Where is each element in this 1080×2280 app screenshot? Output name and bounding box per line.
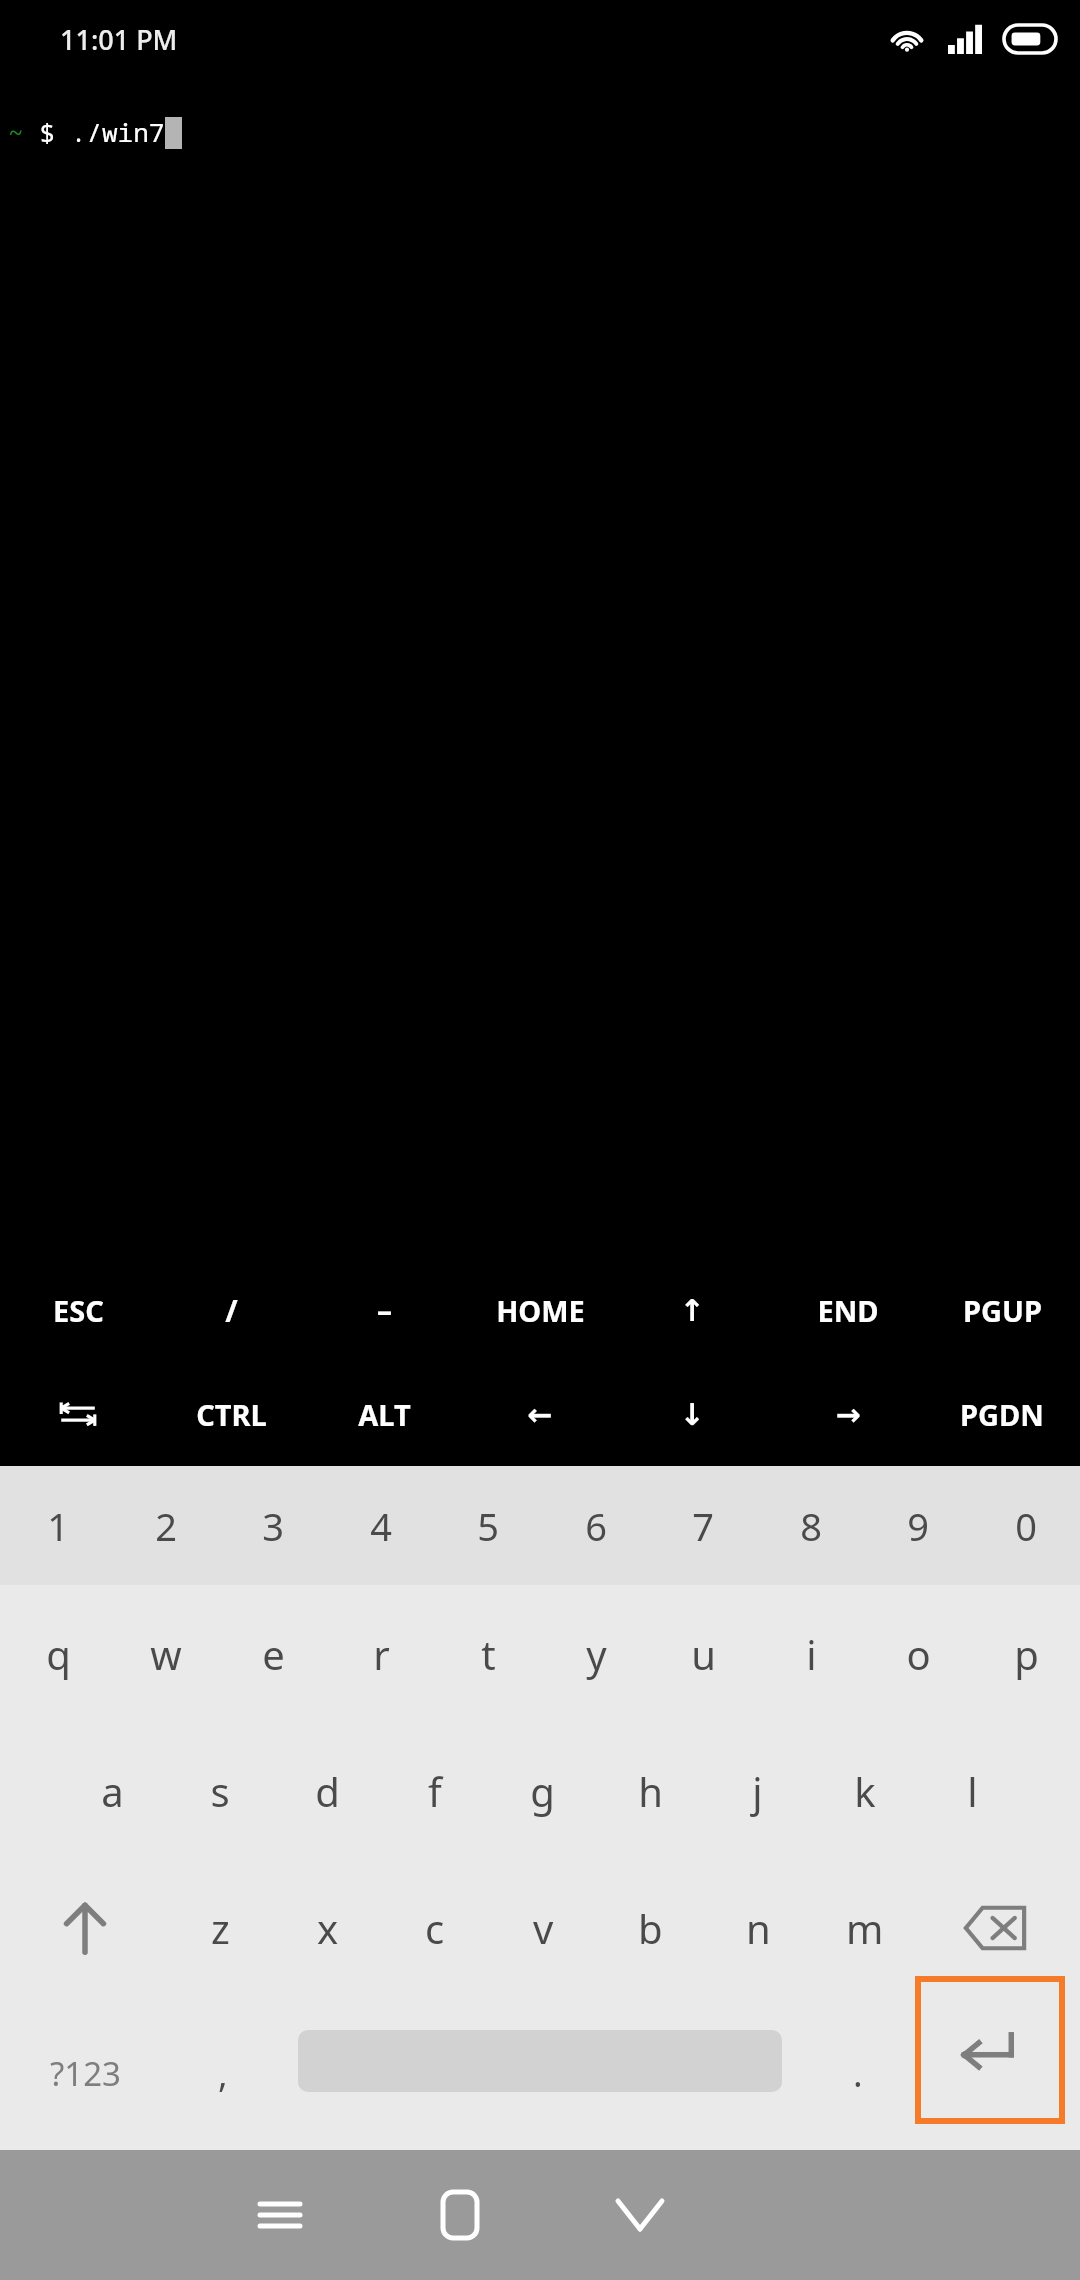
button[interactable]: c bbox=[381, 1859, 489, 1996]
button[interactable]: k bbox=[811, 1722, 919, 1859]
button[interactable]: ESC bbox=[2, 1258, 154, 1362]
button[interactable]: t bbox=[434, 1585, 542, 1722]
button[interactable]: o bbox=[864, 1585, 972, 1722]
staticText: / bbox=[225, 1290, 238, 1331]
button[interactable]: Shift bbox=[20, 1859, 150, 1996]
button[interactable]: 9 bbox=[864, 1466, 972, 1585]
staticText: 7 bbox=[692, 1500, 714, 1552]
button[interactable]: Home bbox=[370, 2150, 550, 2280]
button[interactable]: 4 bbox=[327, 1466, 435, 1585]
button[interactable]: 1 bbox=[4, 1466, 112, 1585]
staticText: m bbox=[846, 1901, 884, 1955]
button[interactable]: r bbox=[327, 1585, 435, 1722]
button[interactable]: w bbox=[112, 1585, 220, 1722]
staticText: n bbox=[746, 1901, 771, 1955]
button[interactable]: ↑ bbox=[616, 1258, 768, 1362]
button[interactable]: n bbox=[704, 1859, 812, 1996]
button[interactable]: → bbox=[772, 1362, 924, 1466]
button[interactable]: e bbox=[219, 1585, 327, 1722]
staticText: c bbox=[425, 1901, 445, 1955]
button[interactable]: v bbox=[489, 1859, 597, 1996]
button[interactable]: b bbox=[596, 1859, 704, 1996]
button[interactable]: s bbox=[166, 1722, 274, 1859]
staticText: PGUP bbox=[963, 1291, 1042, 1330]
button[interactable]: l bbox=[918, 1722, 1026, 1859]
staticText: e bbox=[262, 1627, 285, 1681]
button[interactable]: g bbox=[488, 1722, 596, 1859]
button[interactable]: HOME bbox=[464, 1258, 616, 1362]
staticText: CTRL bbox=[196, 1395, 267, 1434]
staticText: 6 bbox=[585, 1500, 607, 1552]
staticText: z bbox=[211, 1901, 230, 1955]
staticText: w bbox=[150, 1627, 182, 1681]
button[interactable]: 3 bbox=[219, 1466, 327, 1585]
staticText: 9 bbox=[907, 1500, 929, 1552]
button[interactable]: u bbox=[649, 1585, 757, 1722]
button[interactable]: 2 bbox=[112, 1466, 220, 1585]
staticText: s bbox=[210, 1764, 230, 1818]
button[interactable]: / bbox=[155, 1258, 307, 1362]
button[interactable]: Back bbox=[550, 2150, 730, 2280]
staticText: 1 bbox=[47, 1500, 69, 1552]
staticText: x bbox=[317, 1901, 339, 1955]
button[interactable]: d bbox=[273, 1722, 381, 1859]
staticText: d bbox=[315, 1764, 340, 1818]
staticText: o bbox=[906, 1627, 931, 1681]
button[interactable]: ?123 bbox=[20, 1996, 150, 2150]
staticText: 5 bbox=[477, 1500, 499, 1552]
button[interactable]: f bbox=[381, 1722, 489, 1859]
button[interactable]: j bbox=[703, 1722, 811, 1859]
button[interactable]: 7 bbox=[649, 1466, 757, 1585]
staticText: PGDN bbox=[960, 1395, 1044, 1434]
staticText: j bbox=[752, 1764, 763, 1818]
staticText: – bbox=[377, 1290, 392, 1331]
staticText: ↓ bbox=[679, 1397, 705, 1432]
staticText: ESC bbox=[53, 1291, 104, 1330]
button[interactable]: , bbox=[170, 1996, 275, 2150]
button[interactable]: p bbox=[972, 1585, 1080, 1722]
staticText: b bbox=[638, 1901, 663, 1955]
button[interactable]: . bbox=[805, 1996, 910, 2150]
staticText: 8 bbox=[800, 1500, 822, 1552]
staticText: p bbox=[1014, 1627, 1039, 1681]
button[interactable]: PGUP bbox=[926, 1258, 1078, 1362]
staticText: → bbox=[835, 1397, 861, 1432]
staticText: , bbox=[218, 2049, 228, 2098]
button[interactable]: z bbox=[166, 1859, 274, 1996]
staticText: ALT bbox=[358, 1395, 411, 1434]
button[interactable]: i bbox=[757, 1585, 865, 1722]
button[interactable]: m bbox=[811, 1859, 919, 1996]
staticText: END bbox=[817, 1291, 879, 1330]
button[interactable]: 0 bbox=[972, 1466, 1080, 1585]
staticText: $ ./win7 bbox=[24, 114, 165, 149]
button[interactable]: Backspace bbox=[930, 1859, 1060, 1996]
button[interactable]: 5 bbox=[434, 1466, 542, 1585]
staticText: h bbox=[638, 1764, 663, 1818]
button[interactable]: a bbox=[58, 1722, 166, 1859]
button[interactable]: CTRL bbox=[155, 1362, 307, 1466]
button[interactable]: ALT bbox=[308, 1362, 460, 1466]
staticText: y bbox=[586, 1627, 607, 1681]
staticText: 2 bbox=[155, 1500, 177, 1552]
button[interactable]: ↓ bbox=[616, 1362, 768, 1466]
staticText: ↑ bbox=[679, 1293, 705, 1328]
button[interactable]: Enter bbox=[915, 1976, 1065, 2124]
button[interactable]: Tab bbox=[2, 1362, 154, 1466]
button[interactable]: x bbox=[274, 1859, 382, 1996]
button[interactable]: – bbox=[308, 1258, 460, 1362]
button[interactable]: h bbox=[596, 1722, 704, 1859]
button[interactable]: END bbox=[772, 1258, 924, 1362]
button[interactable]: PGDN bbox=[926, 1362, 1078, 1466]
staticText: k bbox=[854, 1764, 876, 1818]
staticText: HOME bbox=[496, 1291, 585, 1330]
staticText: q bbox=[46, 1627, 71, 1681]
staticText: v bbox=[533, 1901, 554, 1955]
button[interactable]: y bbox=[542, 1585, 650, 1722]
button[interactable]: 6 bbox=[542, 1466, 650, 1585]
button[interactable]: 8 bbox=[757, 1466, 865, 1585]
staticText: ~ bbox=[8, 114, 24, 149]
button[interactable]: Recents bbox=[190, 2150, 370, 2280]
button[interactable]: ← bbox=[464, 1362, 616, 1466]
button[interactable]: q bbox=[4, 1585, 112, 1722]
